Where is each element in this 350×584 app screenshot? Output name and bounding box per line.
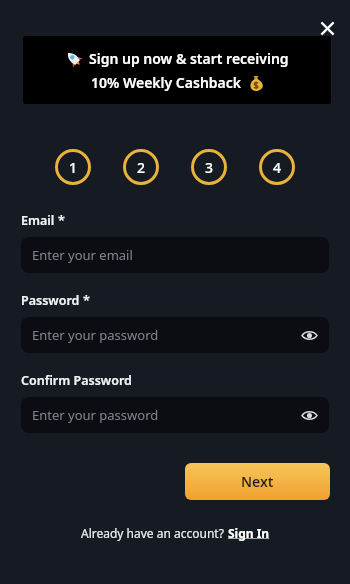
staticText: 4 <box>273 158 282 177</box>
button[interactable]: Show password <box>297 323 321 347</box>
button[interactable]: Enter your password <box>21 317 329 353</box>
button[interactable]: Step 4 <box>259 149 295 185</box>
staticText: Sign up now & start receiving <box>89 49 289 68</box>
staticText: 1 <box>69 158 78 177</box>
staticText: Password <box>21 292 80 309</box>
staticText: 10% Weekly Cashback <box>91 73 242 92</box>
button[interactable]: Enter your password <box>21 397 329 433</box>
staticText: Confirm Password <box>21 372 132 389</box>
staticText: Enter your password <box>32 326 159 344</box>
staticText: Already have an account? <box>81 525 228 541</box>
staticText: Email <box>21 212 55 229</box>
button[interactable]: Step 2 <box>123 149 159 185</box>
button[interactable]: Enter your email <box>21 237 329 273</box>
button[interactable]: Sign up now & start receiving <box>23 36 331 104</box>
button[interactable]: Show password <box>297 403 321 427</box>
staticText: Next <box>241 472 274 491</box>
button[interactable]: Step 3 <box>191 149 227 185</box>
staticText: * <box>83 292 90 309</box>
staticText: * <box>58 212 65 229</box>
button[interactable]: Next <box>185 463 330 500</box>
staticText: Sign In <box>228 525 270 541</box>
button[interactable]: Sign In <box>228 525 270 541</box>
button[interactable]: Close <box>309 10 345 46</box>
staticText: Enter your password <box>32 406 159 424</box>
staticText: 2 <box>137 158 146 177</box>
staticText: Enter your email <box>32 246 133 264</box>
staticText: 3 <box>205 158 214 177</box>
button[interactable]: Step 1 <box>55 149 91 185</box>
